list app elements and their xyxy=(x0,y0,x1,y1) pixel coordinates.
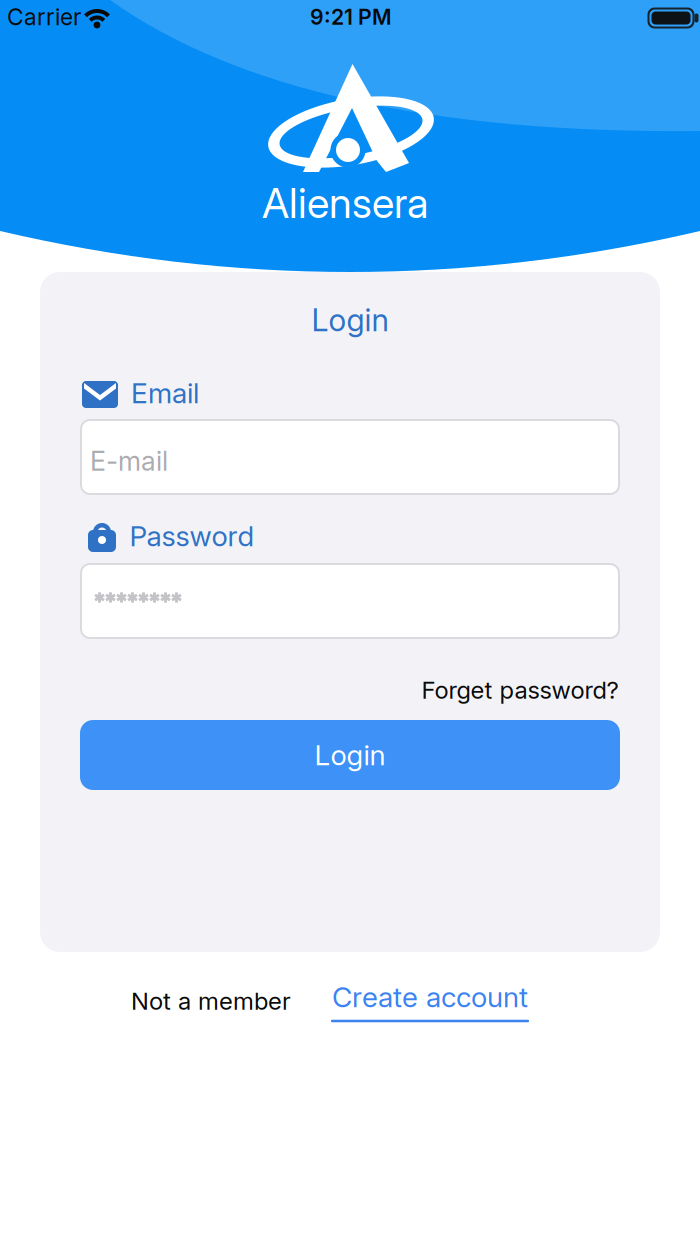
button[interactable] xyxy=(80,563,620,639)
staticText: Email xyxy=(131,376,199,409)
staticText: Login xyxy=(314,738,385,771)
staticText: Aliensera xyxy=(262,179,428,227)
staticText: 9:21 PM xyxy=(310,4,392,30)
staticText: Carrier xyxy=(7,4,81,30)
button[interactable]: Login xyxy=(80,720,620,790)
staticText: Forget password? xyxy=(421,676,618,704)
staticText: Password xyxy=(129,519,254,552)
staticText: E-mail xyxy=(90,445,168,477)
staticText: Not a member xyxy=(131,987,291,1015)
button[interactable]: Forget password? xyxy=(421,676,618,704)
button[interactable]: Create account xyxy=(331,982,529,1024)
staticText: Create account xyxy=(332,980,528,1013)
button[interactable]: E-mail xyxy=(80,419,620,495)
staticText: Login xyxy=(311,302,388,338)
